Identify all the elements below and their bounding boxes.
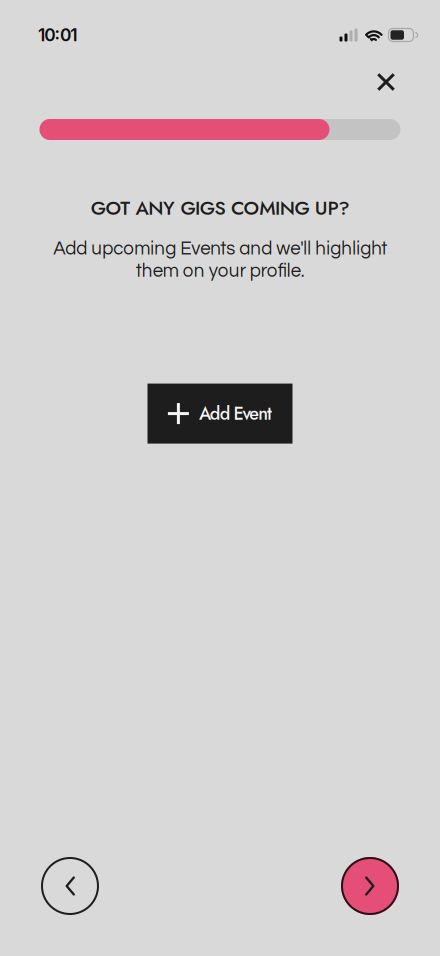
- staticText: 10:01: [38, 24, 77, 45]
- button[interactable]: Close: [364, 60, 408, 104]
- staticText: Add upcoming Events and we'll highlight …: [53, 239, 387, 281]
- button[interactable]: Next step: [341, 857, 399, 915]
- staticText: GOT ANY GIGS COMING UP?: [91, 194, 349, 222]
- button[interactable]: Add Event: [147, 384, 292, 444]
- button[interactable]: Previous step: [41, 857, 99, 915]
- staticText: Add Event: [199, 401, 272, 427]
